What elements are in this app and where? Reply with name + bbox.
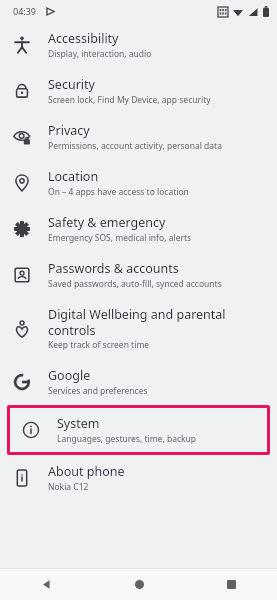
button[interactable]: Digital Wellbeing and parental controls — [0, 298, 277, 359]
staticText: Saved passwords, auto-fill, synced accou… — [48, 278, 222, 290]
staticText: Screen lock, Find My Device, app securit… — [48, 94, 211, 106]
staticText: Digital Wellbeing and parental controls — [48, 306, 265, 338]
staticText: Location — [48, 168, 99, 185]
staticText: Security — [48, 76, 95, 93]
button[interactable]: Google — [0, 359, 277, 405]
staticText: Nokia C12 — [48, 481, 89, 493]
staticText: Display, interaction, audio — [48, 48, 152, 60]
staticText: Permissions, account activity, personal … — [48, 140, 222, 152]
button[interactable]: Passwords & accounts — [0, 252, 277, 298]
staticText: Privacy — [48, 122, 90, 139]
staticText: System — [57, 415, 100, 432]
button[interactable]: Security — [0, 68, 277, 114]
button[interactable]: Privacy — [0, 114, 277, 160]
staticText: Languages, gestures, time, backup — [57, 433, 197, 445]
staticText: Accessibility — [48, 30, 119, 47]
button[interactable]: Home — [93, 568, 185, 600]
staticText: On – 4 apps have access to location — [48, 186, 189, 198]
button[interactable]: Recents — [185, 568, 277, 600]
staticText: Passwords & accounts — [48, 260, 179, 277]
staticText: Safety & emergency — [48, 214, 166, 231]
staticText: Keep track of screen time — [48, 339, 150, 351]
button[interactable]: Back — [0, 568, 93, 600]
button[interactable]: Safety & emergency — [0, 206, 277, 252]
button[interactable]: Location — [0, 160, 277, 206]
button[interactable]: System — [9, 407, 268, 453]
button[interactable]: About phone — [0, 455, 277, 501]
staticText: Emergency SOS, medical info, alerts — [48, 232, 192, 244]
button[interactable]: Accessibility — [0, 22, 277, 68]
staticText: Google — [48, 367, 91, 384]
staticText: About phone — [48, 463, 125, 480]
staticText: 04:39 — [13, 5, 37, 17]
staticText: Services and preferences — [48, 385, 148, 397]
